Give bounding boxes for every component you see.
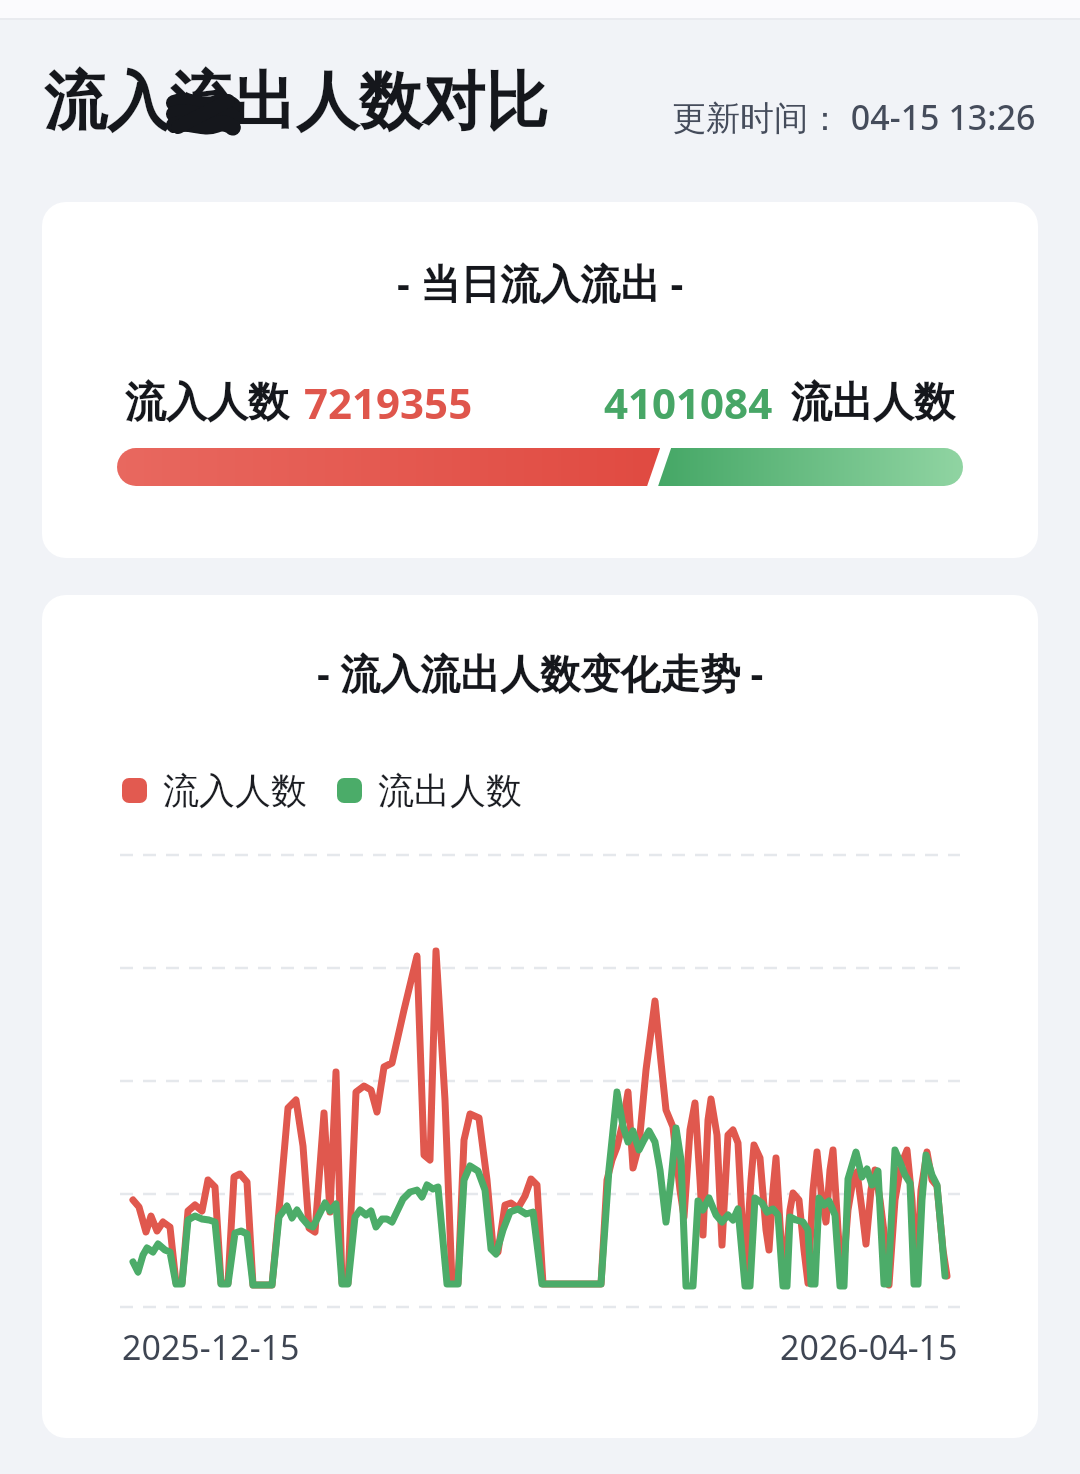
staticText: 2025-12-15 xyxy=(122,1324,300,1370)
staticText: 流入人数 xyxy=(163,768,307,813)
staticText: 更新时间： 04-15 13:26 xyxy=(672,94,1036,140)
staticText: - 流入流出人数变化走势 - xyxy=(317,645,764,700)
button[interactable]: - 流入流出人数变化走势 - xyxy=(42,595,1038,1438)
staticText: 流出人数 xyxy=(378,768,522,813)
staticText: 流入流出人数对比 xyxy=(44,62,548,141)
staticText: - 当日流入流出 - xyxy=(397,255,684,310)
staticText: 流出人数 xyxy=(791,377,955,429)
staticText: 4101084 xyxy=(604,374,773,431)
staticText: 流入人数 xyxy=(125,377,289,429)
button[interactable]: - 当日流入流出 - xyxy=(42,202,1038,558)
staticText: 2026-04-15 xyxy=(780,1324,958,1370)
staticText: 7219355 xyxy=(304,374,473,431)
